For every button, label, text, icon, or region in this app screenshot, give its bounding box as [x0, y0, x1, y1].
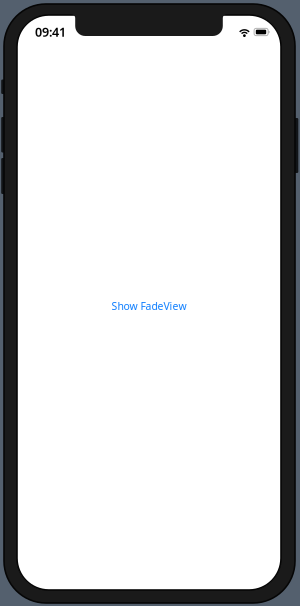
staticText: Show FadeView [111, 299, 186, 313]
button[interactable]: Show FadeView [104, 294, 193, 318]
staticText: 09:41 [35, 23, 66, 41]
